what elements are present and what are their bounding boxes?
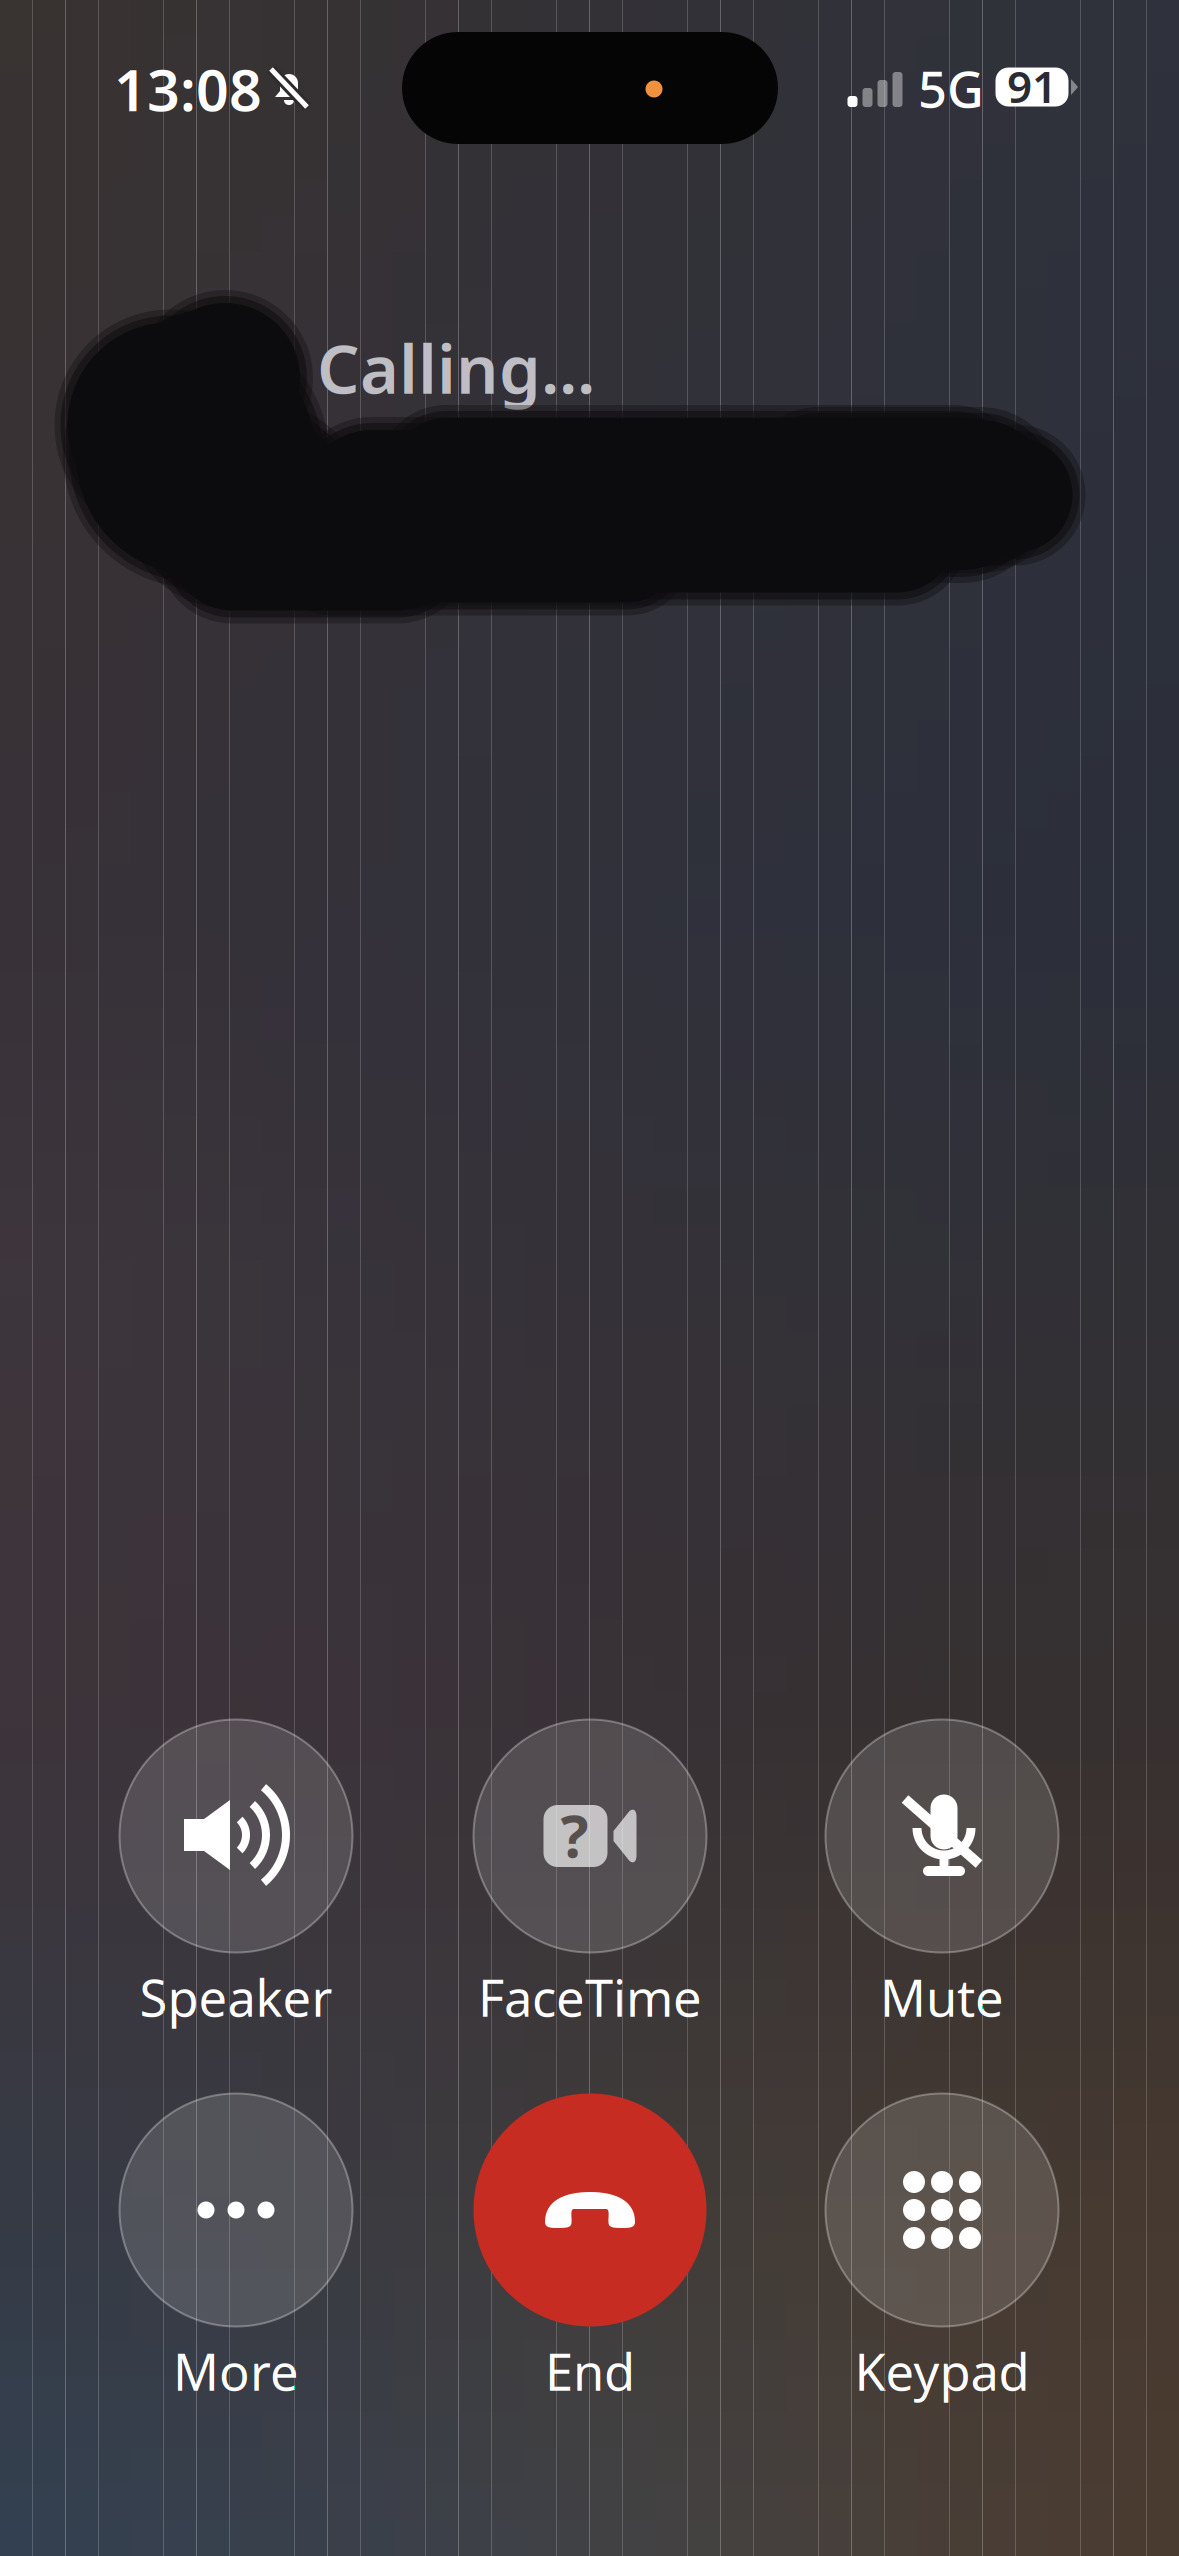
button[interactable]: Mute <box>792 1719 1092 2153</box>
staticText: ? <box>560 1796 588 1874</box>
staticText: Keypad <box>854 2337 1029 2405</box>
staticText: End <box>545 2337 635 2405</box>
button[interactable]: End <box>440 2093 740 2527</box>
staticText: 5G <box>918 54 984 122</box>
button[interactable]: More <box>86 2093 386 2527</box>
staticText: More <box>173 2337 299 2405</box>
staticText: Calling... <box>317 324 595 412</box>
button[interactable]: Speaker <box>86 1719 386 2153</box>
staticText: 91 <box>1007 57 1057 115</box>
staticText: 13:08 <box>114 51 262 127</box>
button[interactable]: ? <box>440 1719 740 2153</box>
staticText: Mute <box>880 1963 1004 2031</box>
staticText: Speaker <box>139 1963 332 2031</box>
staticText: Martin Feindor <box>304 411 1040 545</box>
staticText: FaceTime <box>478 1963 702 2031</box>
button[interactable]: Keypad <box>792 2093 1092 2527</box>
